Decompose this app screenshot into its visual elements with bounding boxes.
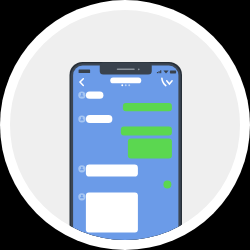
button[interactable]: More options bbox=[169, 84, 181, 98]
button[interactable]: Call bbox=[157, 84, 169, 98]
button[interactable]: Back bbox=[72, 84, 84, 98]
button[interactable]: Conversation title bbox=[104, 84, 148, 98]
